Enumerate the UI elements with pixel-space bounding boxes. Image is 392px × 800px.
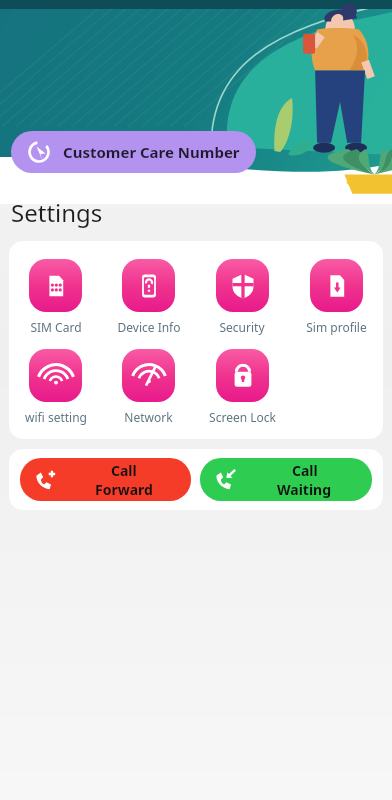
staticText: wifi setting (25, 409, 87, 425)
staticText: Customer Care Number (63, 142, 240, 162)
staticText: Waiting (277, 480, 332, 499)
button[interactable]: Device Info (102, 259, 195, 335)
staticText: Screen Lock (209, 409, 276, 425)
staticText: Device Info (117, 319, 181, 335)
staticText: Sim profile (306, 319, 367, 335)
button[interactable]: Network (102, 349, 195, 425)
staticText: Forward (95, 480, 153, 499)
staticText: Network (124, 409, 173, 425)
staticText: Call (292, 461, 318, 480)
button[interactable]: Call (20, 458, 191, 501)
staticText: Security (219, 319, 265, 335)
button[interactable]: SIM Card (9, 259, 102, 335)
staticText: SIM Card (30, 319, 82, 335)
button[interactable]: Security (195, 259, 289, 335)
staticText: Settings (11, 196, 103, 229)
staticText: Call (111, 461, 137, 480)
button[interactable]: Sim profile (289, 259, 383, 335)
button[interactable]: wifi setting (9, 349, 102, 425)
button[interactable]: Customer Care Number (11, 131, 256, 173)
button[interactable]: Call (200, 458, 372, 501)
button[interactable]: Screen Lock (195, 349, 289, 425)
